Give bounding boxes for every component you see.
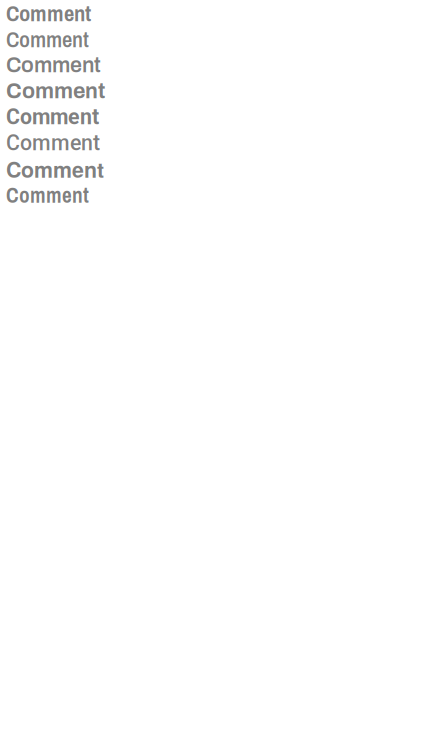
staticText: Comment (6, 79, 105, 103)
staticText: Comment (6, 181, 89, 209)
staticText: Comment (6, 53, 101, 77)
staticText: Comment (6, 0, 91, 28)
staticText: Comment (6, 130, 100, 155)
staticText: Comment (6, 24, 89, 54)
staticText: Comment (6, 104, 99, 129)
staticText: Comment (6, 154, 104, 184)
